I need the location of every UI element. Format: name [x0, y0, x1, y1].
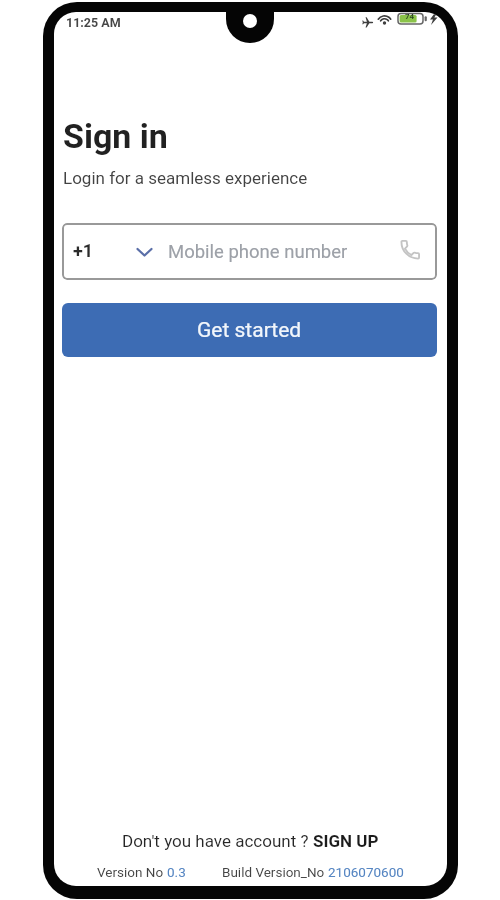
- staticText: 74: [405, 12, 415, 21]
- staticText: Build Version_No: [222, 864, 328, 880]
- button[interactable]: +1: [62, 223, 437, 280]
- staticText: Sign in: [63, 116, 168, 156]
- staticText: +1: [73, 240, 94, 261]
- staticText: Don't you have account ?: [122, 831, 313, 851]
- staticText: 2106070600: [328, 864, 404, 880]
- staticText: Get started: [197, 318, 302, 343]
- staticText: 11:25 AM: [66, 15, 121, 30]
- button[interactable]: Get started: [62, 303, 437, 357]
- staticText: 0.3: [167, 864, 186, 880]
- button[interactable]: SIGN UP: [313, 831, 379, 851]
- staticText: Mobile phone number: [168, 241, 348, 263]
- staticText: Version No: [97, 864, 167, 880]
- staticText: Login for a seamless experience: [63, 168, 308, 188]
